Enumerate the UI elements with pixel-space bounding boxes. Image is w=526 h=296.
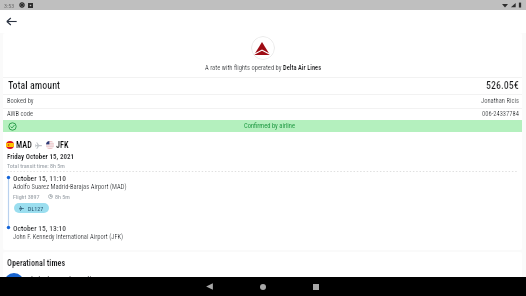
button[interactable]: DL127 xyxy=(14,203,49,213)
button[interactable]: Total amount xyxy=(3,78,522,94)
button[interactable]: Back xyxy=(200,277,219,296)
staticText: October 15, 13:10 xyxy=(13,224,67,233)
button[interactable]: Recent apps xyxy=(306,277,325,296)
staticText: A rate with flights operated by xyxy=(205,64,283,72)
button[interactable]: Back xyxy=(3,13,19,29)
staticText: Operational times xyxy=(7,258,66,268)
staticText: Booked by xyxy=(7,97,34,105)
staticText: Total amount xyxy=(8,80,61,92)
staticText: Adolfo Suarez Madrid-Barajas Airport (MA… xyxy=(13,183,127,191)
button[interactable]: Home xyxy=(253,277,272,296)
staticText: JFK xyxy=(56,140,69,150)
staticText: Total transit time: 8h 5m xyxy=(7,162,65,169)
staticText: Confirmed by airline xyxy=(244,122,296,130)
staticText: 006-24337784 xyxy=(482,110,519,118)
staticText: Friday October 15, 2021 xyxy=(7,153,75,161)
staticText: Flight 3897 xyxy=(13,193,40,200)
staticText: Delta Air Lines xyxy=(283,64,322,72)
staticText: October 15, 11:10 xyxy=(13,174,67,183)
staticText: John F. Kennedy International Airport (J… xyxy=(13,233,124,241)
staticText: AWB code xyxy=(7,110,34,118)
staticText: 526.05€ xyxy=(486,80,519,92)
staticText: Jonathan Ricis xyxy=(481,97,519,105)
staticText: 3:53 xyxy=(4,2,15,9)
staticText: Latest acceptance time xyxy=(31,274,101,283)
staticText: DL127 xyxy=(28,205,44,212)
staticText: 8h 5m xyxy=(55,193,70,200)
staticText: MAD xyxy=(16,140,32,150)
